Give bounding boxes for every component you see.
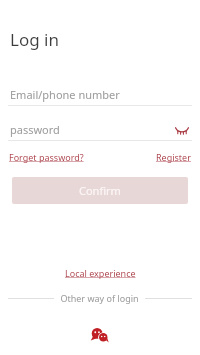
button[interactable]: Local experience — [65, 267, 136, 279]
staticText: Log in — [10, 28, 59, 51]
staticText: Forget password? — [9, 151, 84, 163]
staticText: Local experience — [65, 267, 136, 279]
staticText: Confirm — [79, 183, 121, 198]
button[interactable]: Register — [156, 151, 191, 163]
button[interactable]: Log in with WeChat — [87, 322, 113, 348]
staticText: Register — [156, 151, 191, 163]
staticText: Other way of login — [60, 292, 139, 304]
button[interactable]: Email/phone number — [0, 83, 200, 105]
button[interactable] — [0, 118, 200, 140]
button[interactable]: Forget password? — [9, 151, 84, 163]
button[interactable]: Show password — [172, 119, 192, 139]
staticText: Email/phone number — [10, 87, 120, 102]
button[interactable]: Confirm — [12, 177, 188, 204]
staticText: password — [10, 122, 60, 137]
